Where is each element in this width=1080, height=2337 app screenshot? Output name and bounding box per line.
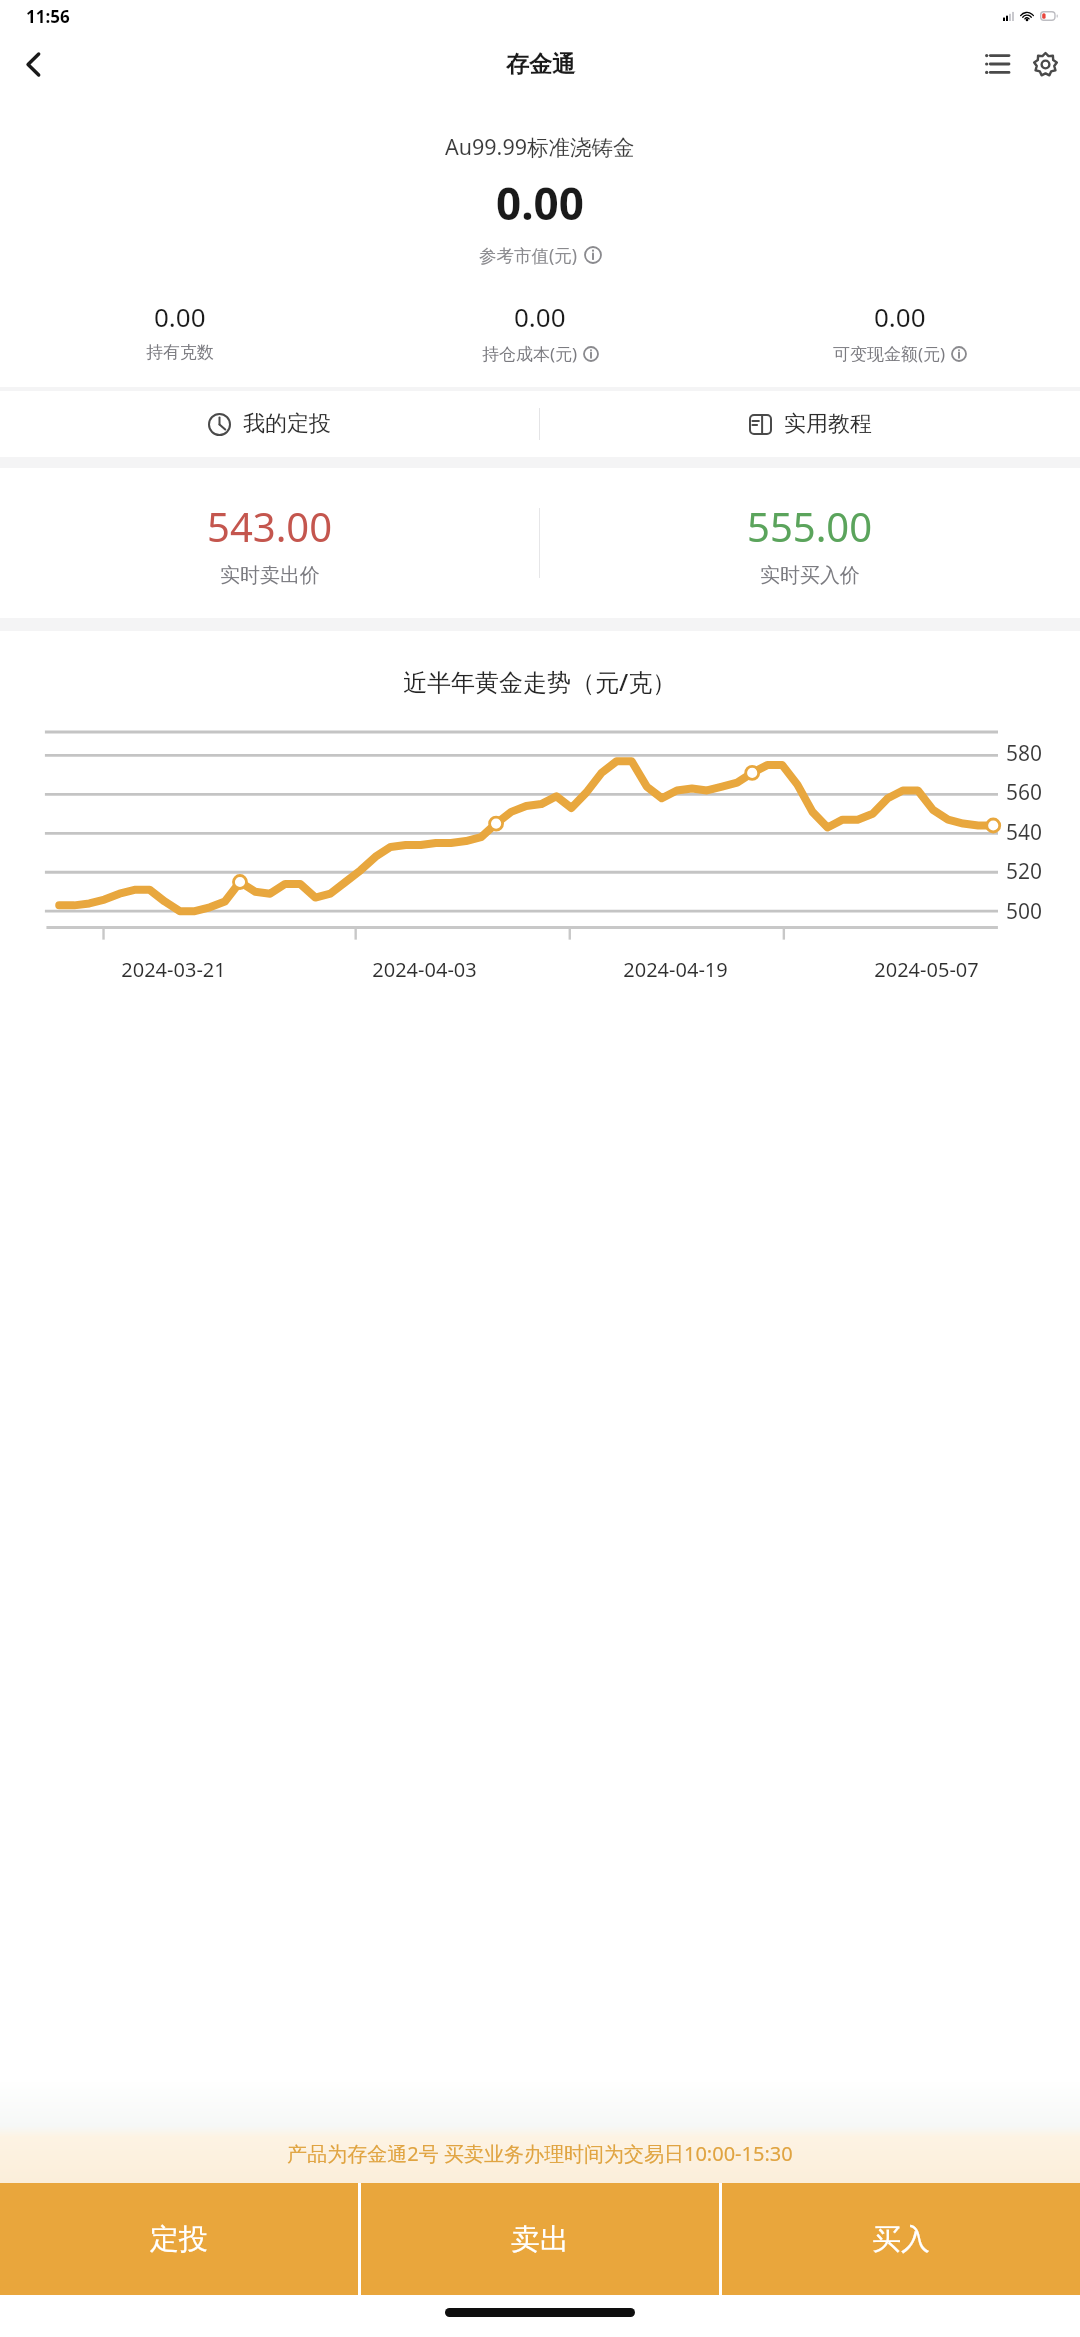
staticText: 0.00	[514, 299, 566, 334]
button[interactable]: 卖出	[361, 2183, 719, 2295]
staticText: 参考市值(元)	[479, 243, 577, 267]
staticText: 11:56	[26, 5, 70, 28]
staticText: 540	[1006, 818, 1043, 847]
staticText: 2024-04-03	[372, 956, 477, 983]
staticText: 2024-03-21	[121, 956, 226, 983]
staticText: 实用教程	[784, 410, 872, 438]
button[interactable]: 0.00	[0, 299, 360, 363]
button[interactable]: Back	[4, 35, 62, 93]
staticText: 可变现金额(元)	[833, 342, 946, 365]
staticText: 产品为存金通2号 买卖业务办理时间为交易日10:00-15:30	[287, 2140, 793, 2167]
staticText: 定投	[150, 2221, 208, 2258]
button[interactable]: 买入	[722, 2183, 1080, 2295]
button[interactable]: 实用教程	[540, 391, 1080, 457]
staticText: 买入	[872, 2221, 930, 2258]
staticText: 2024-05-07	[874, 956, 979, 983]
staticText: 555.00	[747, 499, 873, 553]
staticText: 520	[1006, 857, 1043, 886]
button[interactable]: 我的定投	[0, 391, 539, 457]
staticText: 近半年黄金走势（元/克）	[403, 665, 677, 698]
staticText: 560	[1006, 778, 1043, 807]
staticText: 0.00	[154, 299, 206, 334]
button[interactable]: 0.00	[360, 299, 720, 365]
staticText: 持仓成本(元)	[482, 342, 578, 365]
staticText: 实时卖出价	[220, 563, 320, 588]
staticText: 我的定投	[243, 410, 331, 438]
staticText: 实时买入价	[760, 563, 860, 588]
button[interactable]: Records list	[974, 41, 1020, 87]
button[interactable]: 543.00	[0, 468, 539, 618]
staticText: 存金通	[506, 50, 575, 79]
staticText: 2024-04-19	[623, 956, 728, 983]
staticText: 500	[1006, 897, 1043, 926]
button[interactable]: 555.00	[540, 468, 1080, 618]
staticText: 持有克数	[146, 342, 214, 363]
staticText: 543.00	[207, 499, 333, 553]
staticText: 卖出	[511, 2221, 569, 2258]
button[interactable]: 定投	[0, 2183, 358, 2295]
staticText: Au99.99标准浇铸金	[445, 132, 635, 161]
staticText: 0.00	[496, 173, 584, 233]
staticText: 580	[1006, 739, 1043, 768]
button[interactable]: 0.00	[720, 299, 1080, 365]
button[interactable]: Settings	[1022, 41, 1068, 87]
staticText: 0.00	[874, 299, 926, 334]
